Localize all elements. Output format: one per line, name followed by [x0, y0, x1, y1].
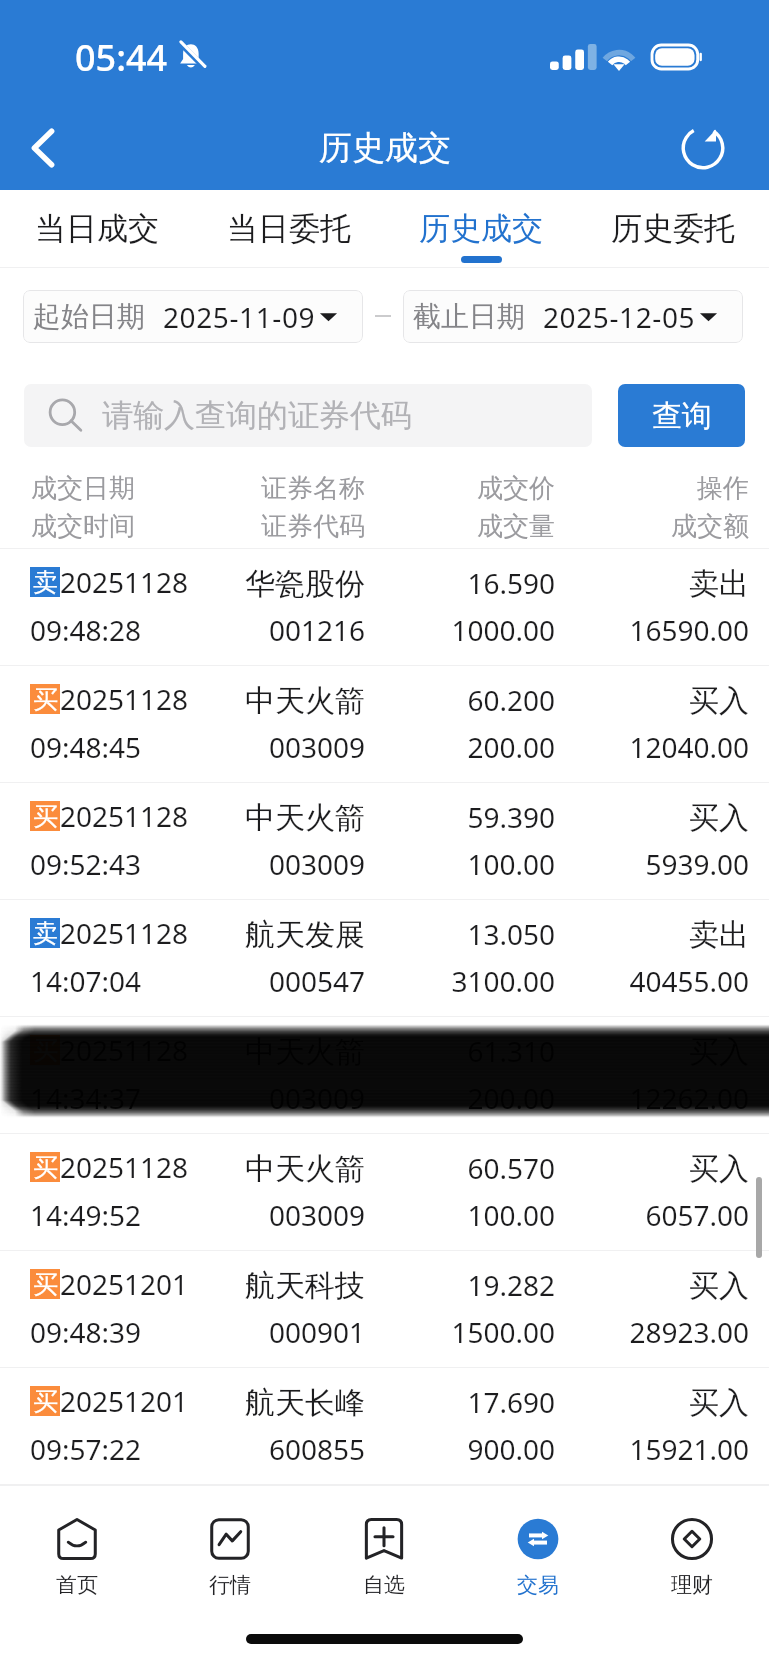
staticText: 查询	[652, 397, 712, 435]
staticText: 航天发展	[0, 916, 365, 954]
staticText: 001216	[0, 611, 365, 649]
staticText: 000547	[0, 962, 365, 1000]
staticText: 003009	[0, 728, 365, 766]
staticText: 当日成交	[35, 209, 159, 248]
button[interactable]: 起始日期	[23, 290, 363, 343]
staticText: 14:34:37	[30, 1079, 142, 1117]
staticText: 6057.00	[0, 1196, 749, 1234]
staticText: 起始日期	[33, 299, 145, 334]
staticText: 成交时间	[31, 510, 135, 543]
staticText: 09:48:28	[30, 611, 142, 649]
staticText: 证券名称	[261, 472, 365, 505]
staticText: 003009	[0, 845, 365, 883]
button[interactable]: 当日成交	[0, 190, 193, 268]
staticText: 中天火箭	[0, 682, 365, 720]
staticText: 当日委托	[227, 209, 351, 248]
staticText: 买	[33, 684, 58, 714]
staticText: 成交价	[477, 472, 555, 505]
button[interactable]: 当日委托	[193, 190, 385, 268]
staticText: 900.00	[0, 1430, 555, 1468]
staticText: 60.200	[0, 681, 555, 719]
staticText: 09:52:43	[30, 845, 142, 883]
staticText: 航天长峰	[0, 1384, 365, 1422]
staticText: 13.050	[0, 915, 555, 953]
staticText: 200.00	[0, 1079, 555, 1117]
staticText: 59.390	[0, 798, 555, 836]
staticText: 20251128	[60, 914, 189, 952]
button[interactable]: 买	[0, 1134, 769, 1251]
staticText: 200.00	[0, 728, 555, 766]
staticText: 20251128	[60, 1148, 189, 1186]
button[interactable]: Back	[8, 101, 78, 195]
staticText: 17.690	[0, 1383, 555, 1421]
button[interactable]: 查询	[618, 384, 745, 447]
staticText: 航天科技	[0, 1267, 365, 1305]
staticText: 历史成交	[419, 209, 543, 248]
staticText: 买入	[0, 799, 749, 837]
staticText: 成交日期	[31, 472, 135, 505]
button[interactable]: 自选	[307, 1518, 461, 1598]
staticText: 截止日期	[413, 299, 525, 334]
staticText: 14:07:04	[30, 962, 142, 1000]
button[interactable]: Refresh	[674, 119, 732, 177]
staticText: 买入	[0, 1267, 749, 1305]
staticText: 003009	[0, 1196, 365, 1234]
button[interactable]: 买	[0, 1368, 769, 1485]
button[interactable]: 买	[0, 1251, 769, 1368]
staticText: 请输入查询的证券代码	[102, 396, 412, 435]
staticText: 中天火箭	[0, 1033, 365, 1071]
staticText: 20251128	[60, 1031, 189, 1069]
button[interactable]: 行情	[153, 1518, 307, 1598]
button[interactable]: 卖	[0, 900, 769, 1017]
staticText: 卖	[33, 567, 58, 597]
staticText: 14:49:52	[30, 1196, 142, 1234]
staticText: 买	[33, 1152, 58, 1182]
staticText: 操作	[697, 472, 749, 505]
staticText: 卖出	[0, 916, 749, 954]
staticText: 1500.00	[0, 1313, 555, 1351]
button[interactable]: 首页	[0, 1518, 153, 1598]
staticText: 40455.00	[0, 962, 749, 1000]
button[interactable]: 买	[0, 783, 769, 900]
staticText: 买	[33, 1386, 58, 1416]
staticText: 61.310	[0, 1032, 555, 1070]
staticText: 理财	[671, 1572, 713, 1598]
staticText: 1000.00	[0, 611, 555, 649]
staticText: 20251201	[60, 1382, 189, 1420]
button[interactable]: 请输入查询的证券代码	[24, 384, 592, 447]
staticText: 行情	[209, 1572, 251, 1598]
button[interactable]: 理财	[615, 1518, 769, 1598]
staticText: 09:48:45	[30, 728, 142, 766]
staticText: 100.00	[0, 845, 555, 883]
staticText: 003009	[0, 1079, 365, 1117]
staticText: 卖出	[0, 565, 749, 603]
staticText: 买入	[0, 1150, 749, 1188]
button[interactable]: 买	[0, 1017, 769, 1134]
staticText: 60.570	[0, 1149, 555, 1187]
button[interactable]: 交易	[461, 1518, 615, 1598]
button[interactable]: 卖	[0, 549, 769, 666]
staticText: 买入	[0, 1033, 749, 1071]
button[interactable]: 历史委托	[577, 190, 769, 268]
staticText: 28923.00	[0, 1313, 749, 1351]
staticText: 20251201	[60, 1265, 189, 1303]
staticText: 3100.00	[0, 962, 555, 1000]
staticText: 600855	[0, 1430, 365, 1468]
staticText: 20251128	[60, 797, 189, 835]
button[interactable]: 历史成交	[385, 190, 577, 268]
staticText: 中天火箭	[0, 1150, 365, 1188]
staticText: 09:48:39	[30, 1313, 142, 1351]
button[interactable]: 截止日期	[403, 290, 743, 343]
staticText: 卖	[33, 918, 58, 948]
staticText: 100.00	[0, 1196, 555, 1234]
staticText: 20251128	[60, 680, 189, 718]
staticText: 买入	[0, 682, 749, 720]
button[interactable]: 买	[0, 666, 769, 783]
staticText: 交易	[517, 1572, 559, 1598]
staticText: 000901	[0, 1313, 365, 1351]
staticText: 自选	[363, 1572, 405, 1598]
staticText: 买入	[0, 1384, 749, 1422]
staticText: 成交额	[671, 510, 749, 543]
staticText: 19.282	[0, 1266, 555, 1304]
